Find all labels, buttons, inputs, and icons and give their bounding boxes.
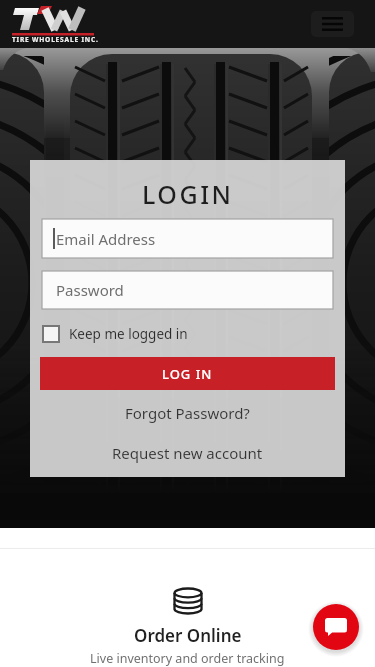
staticText: Live inventory and order tracking xyxy=(90,650,285,667)
staticText: LOGIN xyxy=(142,177,234,211)
staticText: Keep me logged in xyxy=(69,325,188,343)
button[interactable] xyxy=(311,11,354,37)
staticText: Email Address xyxy=(56,229,156,249)
button[interactable]: Email Address xyxy=(42,219,333,258)
button[interactable] xyxy=(313,604,359,650)
staticText: Password xyxy=(56,280,124,300)
staticText: Forgot Password? xyxy=(125,403,250,423)
staticText: Request new account xyxy=(112,443,263,463)
button[interactable]: Keep me logged in xyxy=(43,325,188,343)
button[interactable]: Password xyxy=(42,271,333,309)
button[interactable]: LOG IN xyxy=(40,357,335,390)
button[interactable]: Forgot Password? xyxy=(121,399,254,427)
button[interactable]: Request new account xyxy=(108,439,267,467)
button[interactable]: TIRE WHOLESALE INC. xyxy=(12,4,112,44)
staticText: Order Online xyxy=(134,624,242,647)
staticText: TIRE WHOLESALE INC. xyxy=(12,35,99,44)
staticText: LOG IN xyxy=(162,365,213,383)
